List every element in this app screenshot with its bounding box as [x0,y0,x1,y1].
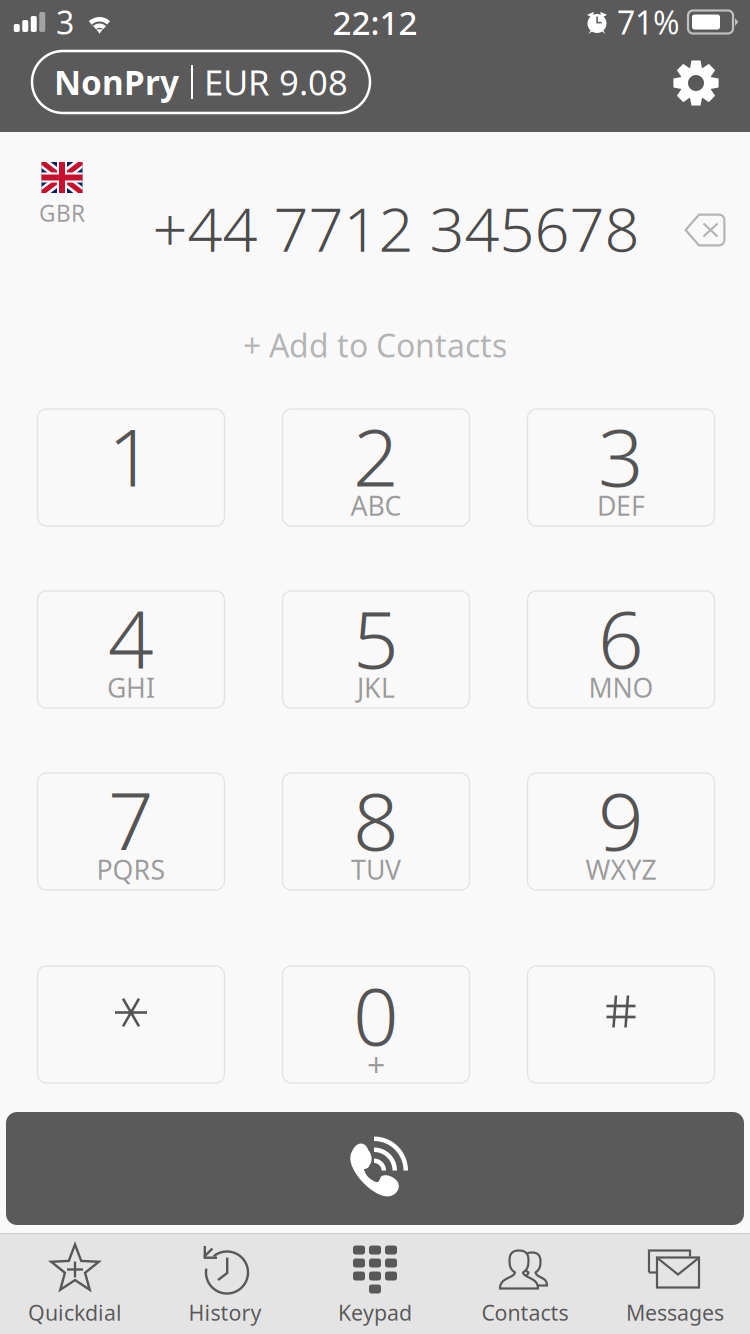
staticText: Quickdial [28,1298,122,1327]
button[interactable]: 4 [37,591,224,708]
button[interactable]: 9 [527,773,714,890]
button[interactable]: Contacts [450,1233,600,1334]
staticText: GBR [39,198,85,228]
button[interactable]: Quickdial [0,1233,150,1334]
button[interactable]: 6 [527,591,714,708]
button[interactable]: Messages [600,1233,750,1334]
staticText: Keypad [338,1298,412,1327]
staticText: MNO [588,670,653,705]
button[interactable]: Call [6,1112,744,1225]
button[interactable]: 5 [282,591,469,708]
button[interactable] [37,966,224,1083]
staticText: NonPry [54,60,179,104]
staticText: DEF [597,488,645,523]
button[interactable]: Settings [672,64,720,112]
staticText: History [188,1298,261,1327]
button[interactable]: 8 [282,773,469,890]
button[interactable]: 3 [527,409,714,526]
staticText: 9 [598,766,644,873]
staticText: TUV [351,852,401,887]
staticText: ABC [350,488,401,523]
staticText: 4 [108,584,154,691]
staticText: 7 [108,766,154,873]
button[interactable]: 0 [282,966,469,1083]
button[interactable]: 1 [37,409,224,526]
staticText: 3 [56,1,74,43]
staticText: + Add to Contacts [243,324,507,366]
staticText: WXYZ [585,852,656,887]
button[interactable] [527,966,714,1083]
button[interactable]: NonPry [32,57,370,119]
staticText: Messages [626,1298,724,1327]
staticText: EUR 9.08 [204,59,348,105]
staticText: JKL [357,670,395,705]
staticText: PQRS [96,852,165,887]
staticText: 22:12 [332,0,417,44]
staticText: 8 [353,766,399,873]
staticText: 0 [353,961,399,1068]
staticText: 5 [353,584,399,691]
button[interactable]: Keypad [300,1233,450,1334]
staticText: 2 [353,402,399,509]
staticText: + [367,1043,385,1086]
staticText: GHI [107,670,155,705]
staticText: +44 7712 345678 [152,187,639,269]
button[interactable]: 2 [282,409,469,526]
button[interactable]: Delete [673,200,737,260]
staticText: 1 [108,402,154,509]
staticText: 6 [598,584,644,691]
button[interactable]: History [150,1233,300,1334]
staticText: 3 [598,402,644,509]
button[interactable]: 7 [37,773,224,890]
staticText: 71% [617,1,680,43]
button[interactable]: + Add to Contacts [175,324,575,366]
staticText: Contacts [481,1298,568,1327]
